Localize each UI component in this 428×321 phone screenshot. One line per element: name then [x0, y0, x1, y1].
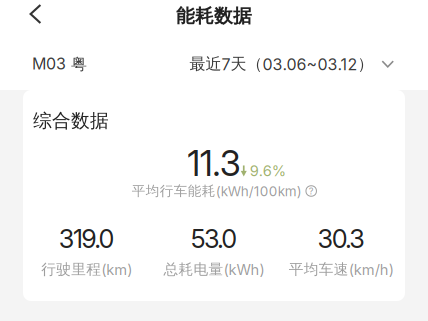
button[interactable]: Back — [13, 0, 57, 29]
staticText: 9.6% — [250, 162, 286, 180]
staticText: 11.3 — [187, 142, 241, 184]
staticText: 能耗数据 — [176, 4, 252, 28]
button[interactable]: About this metric — [306, 185, 317, 196]
staticText: 53.0 — [191, 223, 237, 254]
staticText: 最近7天（03.06~03.12） — [189, 54, 373, 74]
button[interactable]: 最近7天（03.06~03.12） — [189, 54, 428, 74]
staticText: ? — [309, 185, 314, 197]
staticText: 平均行车能耗(kWh/100km) — [132, 182, 302, 199]
staticText: 平均车速(km/h) — [289, 260, 394, 279]
staticText: 总耗电量(kWh) — [163, 260, 264, 279]
staticText: 行驶里程(km) — [41, 260, 132, 279]
staticText: 30.3 — [317, 223, 365, 254]
staticText: M03 粤 — [32, 54, 87, 74]
staticText: 综合数据 — [33, 109, 109, 132]
staticText: 319.0 — [59, 223, 115, 254]
